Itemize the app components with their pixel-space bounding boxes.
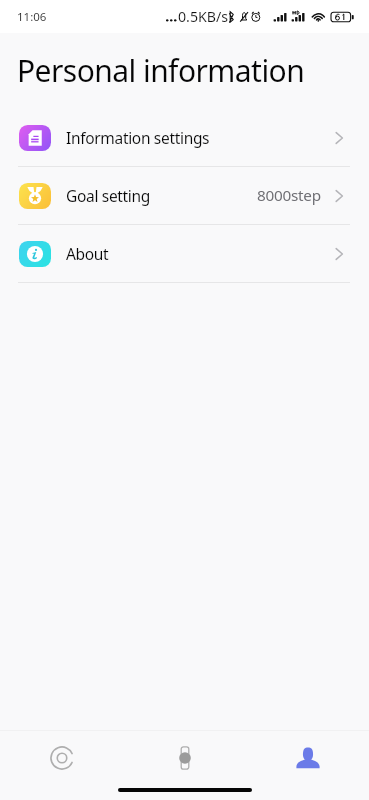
button[interactable]: Information settings xyxy=(0,109,369,166)
staticText: Information settings xyxy=(66,127,210,148)
button[interactable]: Goal setting xyxy=(0,167,369,224)
staticText: About xyxy=(66,243,109,264)
staticText: 8000step xyxy=(257,185,321,206)
button[interactable]: About xyxy=(0,225,369,282)
staticText: 0.5KB/s xyxy=(178,7,229,26)
button[interactable]: Activity xyxy=(0,731,123,785)
staticText: 11:06 xyxy=(17,9,47,25)
staticText: Personal information xyxy=(17,50,305,91)
staticText: Goal setting xyxy=(66,185,151,206)
button[interactable]: Profile xyxy=(246,731,369,785)
button[interactable]: Device xyxy=(123,731,246,785)
